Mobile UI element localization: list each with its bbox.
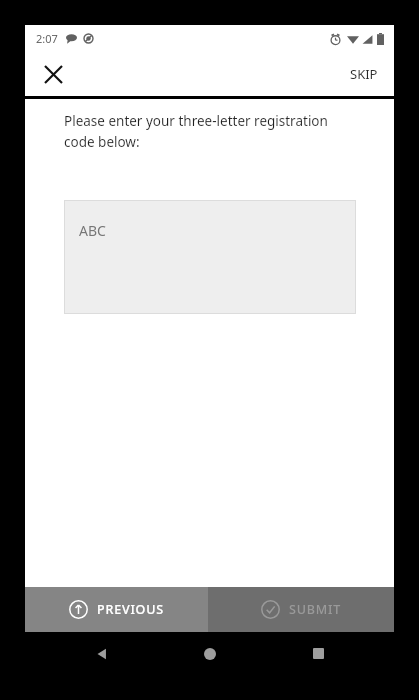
staticText: ABC: [79, 221, 106, 240]
button[interactable]: SUBMIT: [208, 587, 394, 632]
button[interactable]: Close: [37, 58, 69, 90]
button[interactable]: PREVIOUS: [25, 587, 208, 632]
staticText: Please enter your three-letter registrat…: [64, 112, 350, 151]
button[interactable]: Recent apps: [264, 632, 372, 675]
button[interactable]: Back: [47, 632, 156, 675]
button[interactable]: ABC: [65, 201, 355, 313]
staticText: SKIP: [350, 65, 378, 83]
staticText: 2:07: [36, 31, 58, 46]
button[interactable]: Home: [156, 632, 264, 675]
button[interactable]: SKIP: [334, 55, 394, 93]
staticText: SUBMIT: [289, 601, 342, 618]
staticText: PREVIOUS: [97, 601, 164, 618]
